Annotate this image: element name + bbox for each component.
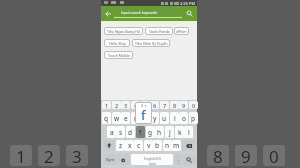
staticText: 4 <box>134 102 138 109</box>
button[interactable]: u <box>160 112 169 124</box>
button[interactable]: s <box>116 126 125 138</box>
staticText: z <box>119 141 123 150</box>
staticText: 0 <box>192 102 196 109</box>
staticText: 9 <box>182 102 186 109</box>
button[interactable]: a <box>107 126 116 138</box>
staticText: Tiểu Ngạo Giang Hồ <box>107 29 141 34</box>
button[interactable]: y <box>150 112 159 124</box>
staticText: s <box>119 128 123 137</box>
button[interactable]: j <box>165 126 174 138</box>
staticText: Sym <box>106 157 115 162</box>
button[interactable]: 2 <box>112 101 121 109</box>
button[interactable]: 7 <box>160 101 169 109</box>
button[interactable]: p <box>189 112 198 124</box>
button[interactable] <box>103 140 115 151</box>
staticText: x <box>128 141 132 150</box>
button[interactable]: c <box>134 140 143 151</box>
staticText: v <box>147 141 151 150</box>
staticText: m <box>173 141 180 150</box>
staticText: a <box>110 128 114 137</box>
button[interactable]: q <box>102 112 111 124</box>
staticText: q <box>104 114 109 123</box>
staticText: Tiên Kiếm Kỳ Duyên <box>135 41 168 46</box>
button[interactable]: aPhim <box>174 27 189 35</box>
button[interactable]: Hello Kitty <box>104 39 130 47</box>
button[interactable]: n <box>163 140 172 151</box>
staticText: Taichi Panda <box>149 29 170 34</box>
button[interactable]: f <box>136 126 145 138</box>
button[interactable]: t <box>141 112 150 124</box>
button[interactable]: 5 <box>141 101 150 109</box>
button[interactable]: z <box>116 140 125 151</box>
staticText: 5 <box>144 102 148 109</box>
button[interactable]: v <box>144 140 153 151</box>
button[interactable]: x <box>125 140 134 151</box>
staticText: 1 <box>105 102 109 109</box>
button[interactable]: Touch Mobile <box>104 51 133 59</box>
button[interactable]: w <box>112 112 121 124</box>
button[interactable]: b <box>153 140 162 151</box>
button[interactable]: i <box>170 112 179 124</box>
staticText: 0 <box>269 145 279 166</box>
button[interactable] <box>131 154 173 165</box>
staticText: aPhim <box>176 29 187 34</box>
button[interactable]: Taichi Panda <box>145 27 173 35</box>
button[interactable] <box>118 154 130 165</box>
button[interactable] <box>182 140 195 151</box>
staticText: c <box>137 141 141 150</box>
staticText: 2 <box>115 102 119 109</box>
staticText: 3 <box>72 145 82 166</box>
button[interactable]: k <box>175 126 184 138</box>
staticText: o <box>182 114 186 123</box>
button[interactable]: d <box>126 126 135 138</box>
staticText: w <box>114 114 120 123</box>
staticText: p <box>191 114 196 123</box>
staticText: 1 <box>16 145 26 166</box>
staticText: 3 <box>124 102 128 109</box>
staticText: 7 <box>163 102 167 109</box>
button[interactable]: l <box>184 126 193 138</box>
button[interactable]: e <box>121 112 130 124</box>
staticText: f <box>139 128 142 137</box>
staticText: k <box>178 128 182 137</box>
staticText: Swaii <box>149 162 156 166</box>
staticText: f <box>141 106 146 124</box>
button[interactable]: 1 <box>102 101 111 109</box>
staticText: u <box>162 114 167 123</box>
staticText: Touch Mobile <box>108 53 130 58</box>
button[interactable]: r <box>131 112 140 124</box>
button[interactable]: 4 <box>131 101 140 109</box>
staticText: 8 <box>213 145 223 166</box>
staticText: English(US) <box>144 157 161 161</box>
button[interactable]: m <box>172 140 181 151</box>
button[interactable]: g <box>146 126 155 138</box>
staticText: 6 <box>153 102 157 109</box>
staticText: 4 c <box>141 103 147 108</box>
button[interactable]: 6 <box>150 101 159 109</box>
button[interactable]: h <box>155 126 164 138</box>
staticText: 8 <box>173 102 177 109</box>
button[interactable]: 8 <box>170 101 179 109</box>
button[interactable] <box>183 154 196 165</box>
staticText: y <box>153 114 157 123</box>
staticText: 9 <box>241 145 251 166</box>
button[interactable]: . <box>175 154 182 165</box>
button[interactable] <box>186 10 194 18</box>
staticText: d <box>128 128 133 137</box>
button[interactable] <box>105 11 112 17</box>
staticText: . <box>178 156 180 163</box>
button[interactable]: 0 <box>189 101 198 109</box>
staticText: j <box>169 128 171 137</box>
button[interactable]: o <box>179 112 188 124</box>
button[interactable]: Tiên Kiếm Kỳ Duyên <box>132 39 170 47</box>
staticText: g <box>148 128 153 137</box>
button[interactable]: Sym <box>103 154 117 165</box>
button[interactable]: Tiểu Ngạo Giang Hồ <box>104 27 143 35</box>
staticText: r <box>134 114 137 123</box>
staticText: i <box>174 114 176 123</box>
staticText: Hello Kitty <box>109 41 126 46</box>
staticText: Input search keywords <box>121 10 158 15</box>
button[interactable]: 3 <box>121 101 130 109</box>
button[interactable]: 9 <box>179 101 188 109</box>
